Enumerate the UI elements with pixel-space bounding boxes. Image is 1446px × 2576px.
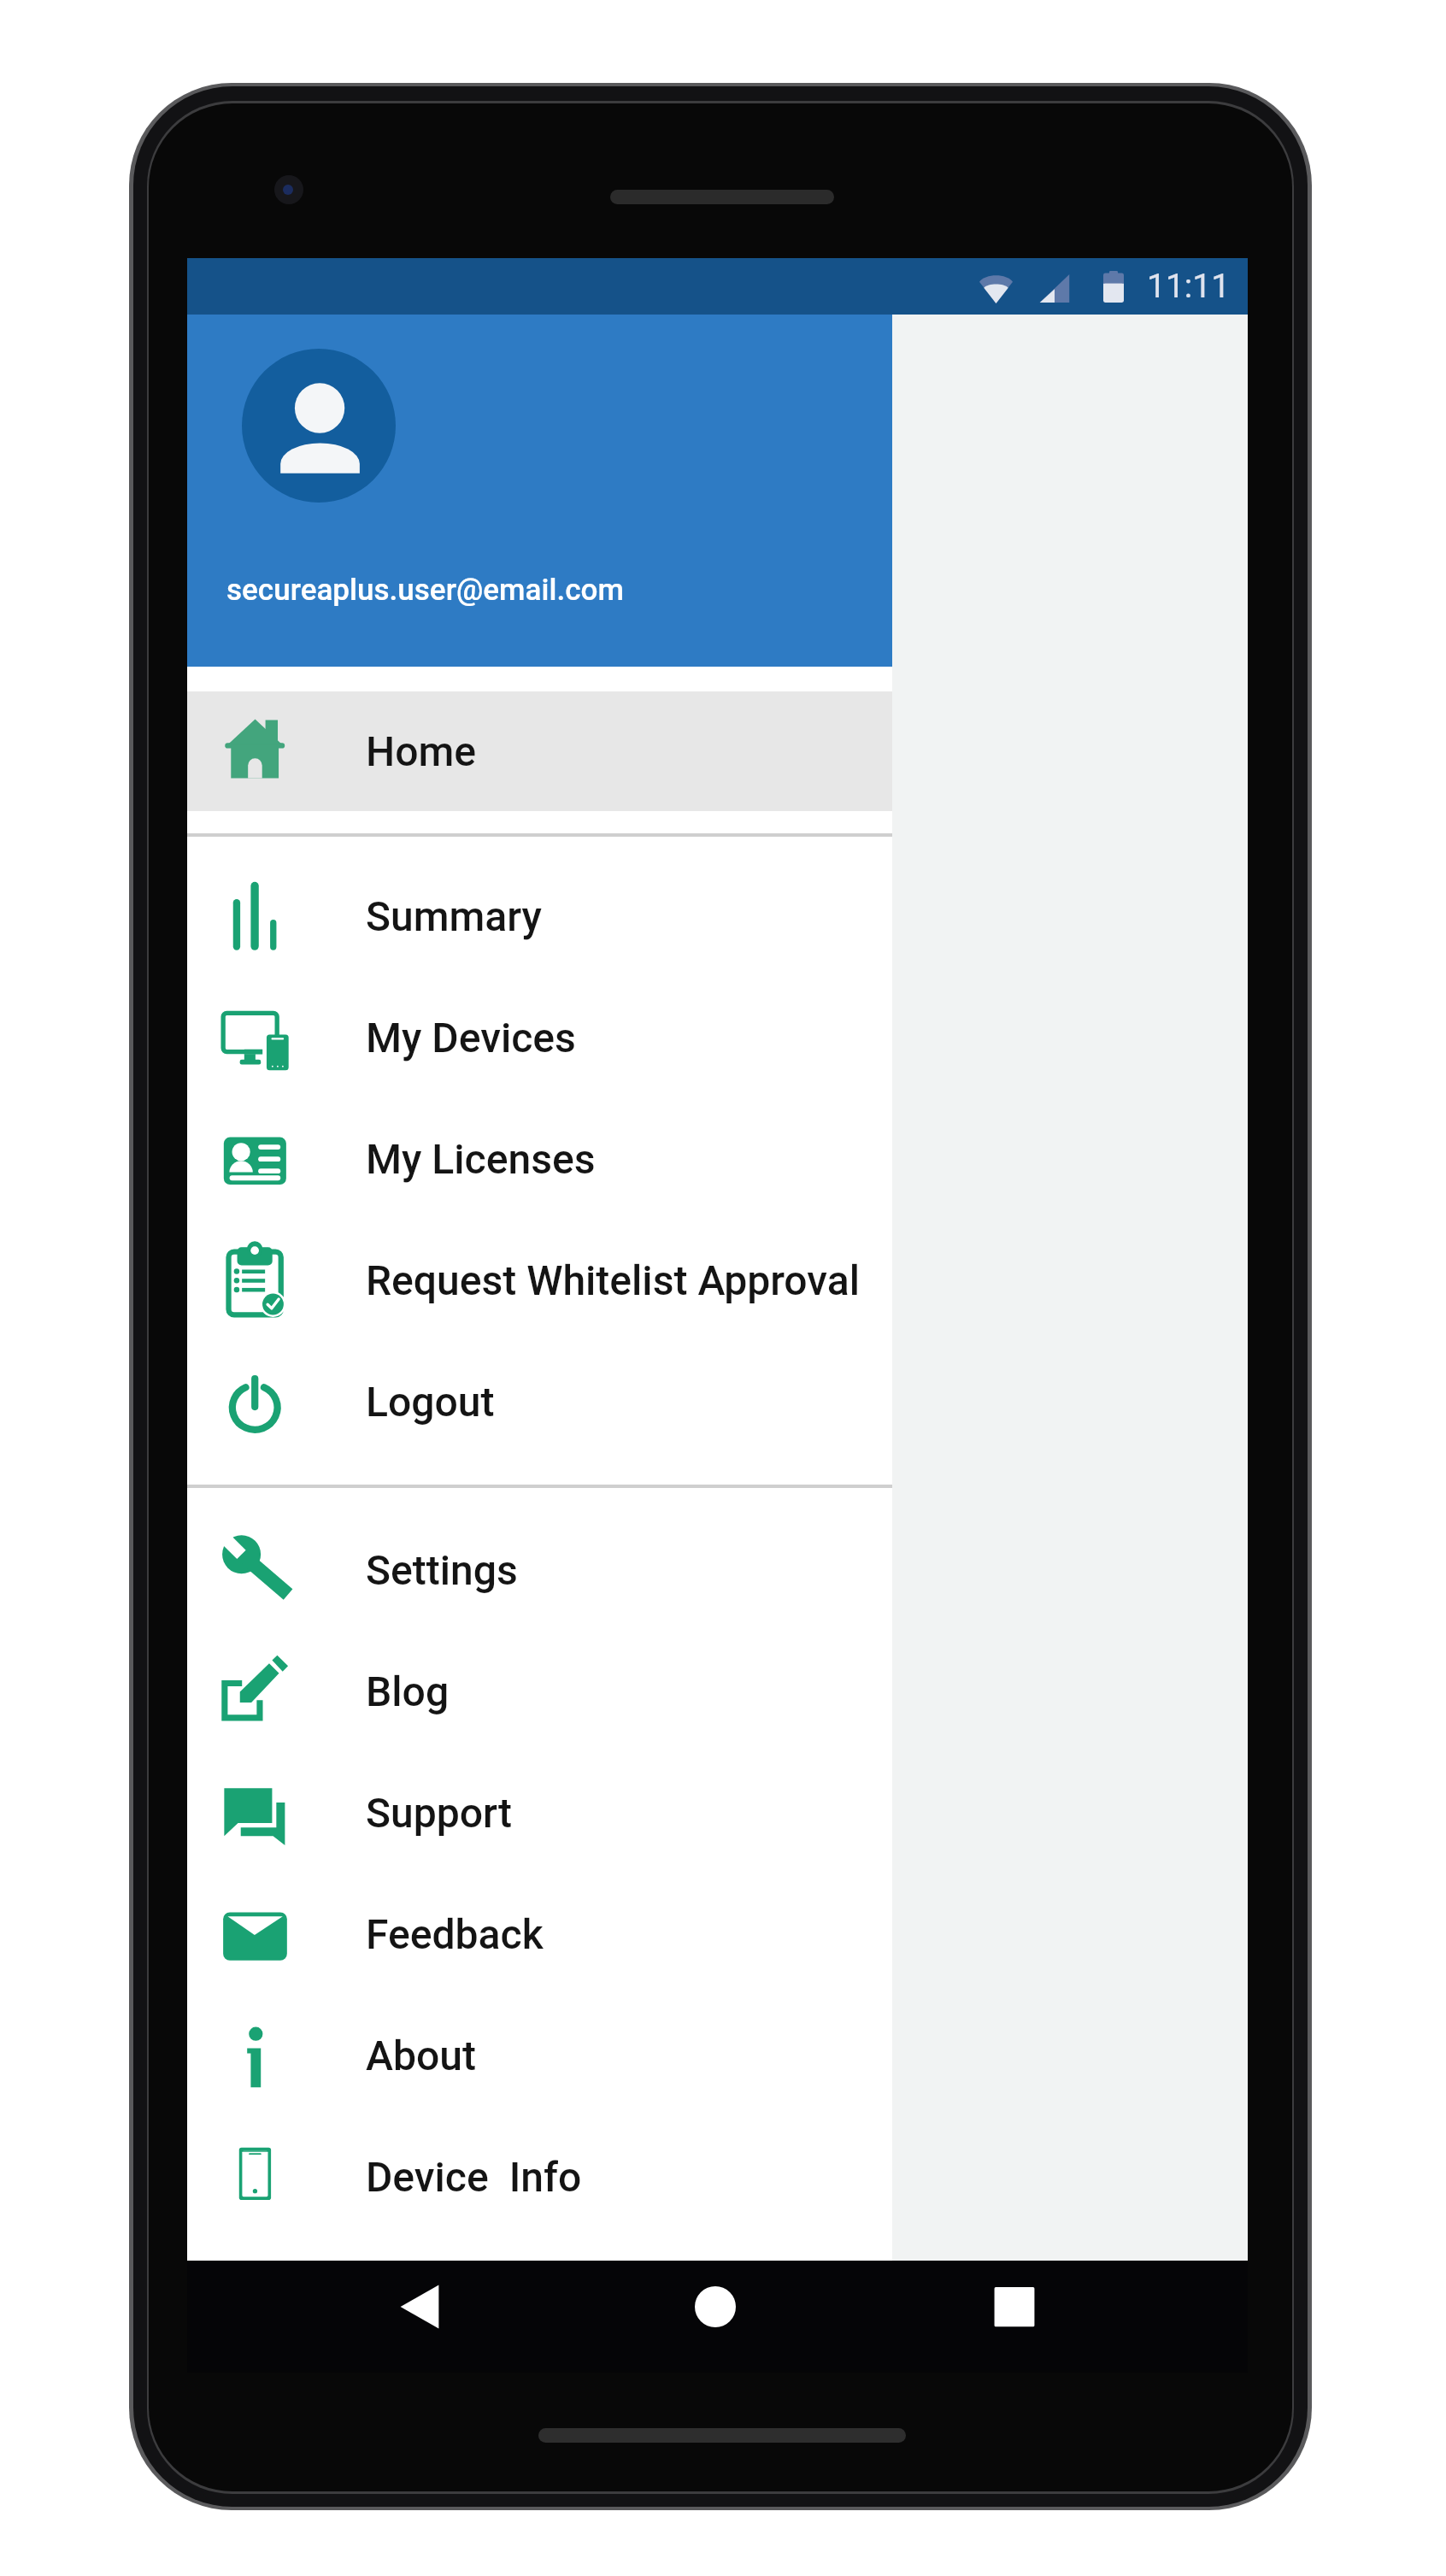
- staticText: Home: [366, 727, 476, 775]
- button[interactable]: Settings: [187, 1509, 892, 1631]
- staticText: Device Info: [366, 2153, 582, 2201]
- staticText: Support: [366, 1789, 513, 1837]
- button[interactable]: About: [187, 1995, 892, 2116]
- staticText: Logout: [366, 1378, 495, 1426]
- staticText: Request Whitelist Approval: [366, 1256, 860, 1304]
- button[interactable]: Home: [187, 691, 892, 811]
- button[interactable]: Support: [187, 1752, 892, 1873]
- staticText: Blog: [366, 1667, 450, 1715]
- staticText: My Devices: [366, 1014, 576, 1062]
- staticText: Feedback: [366, 1910, 544, 1958]
- staticText: secureaplus.user@email.com: [226, 573, 624, 608]
- button[interactable]: Blog: [187, 1631, 892, 1752]
- button[interactable]: My Licenses: [187, 1098, 892, 1220]
- staticText: Settings: [366, 1546, 518, 1594]
- button[interactable]: Logout: [187, 1341, 892, 1462]
- button[interactable]: Device Info: [187, 2116, 892, 2238]
- button[interactable]: Back: [385, 2273, 454, 2341]
- button[interactable]: Request Whitelist Approval: [187, 1220, 892, 1341]
- button[interactable]: My Devices: [187, 977, 892, 1098]
- button[interactable]: Recent apps: [980, 2273, 1049, 2341]
- button[interactable]: Summary: [187, 856, 892, 977]
- staticText: About: [366, 2032, 476, 2079]
- button[interactable]: Home: [681, 2273, 749, 2341]
- staticText: My Licenses: [366, 1135, 596, 1183]
- staticText: Summary: [366, 892, 542, 940]
- button[interactable]: Feedback: [187, 1873, 892, 1995]
- staticText: 11:11: [1147, 267, 1231, 306]
